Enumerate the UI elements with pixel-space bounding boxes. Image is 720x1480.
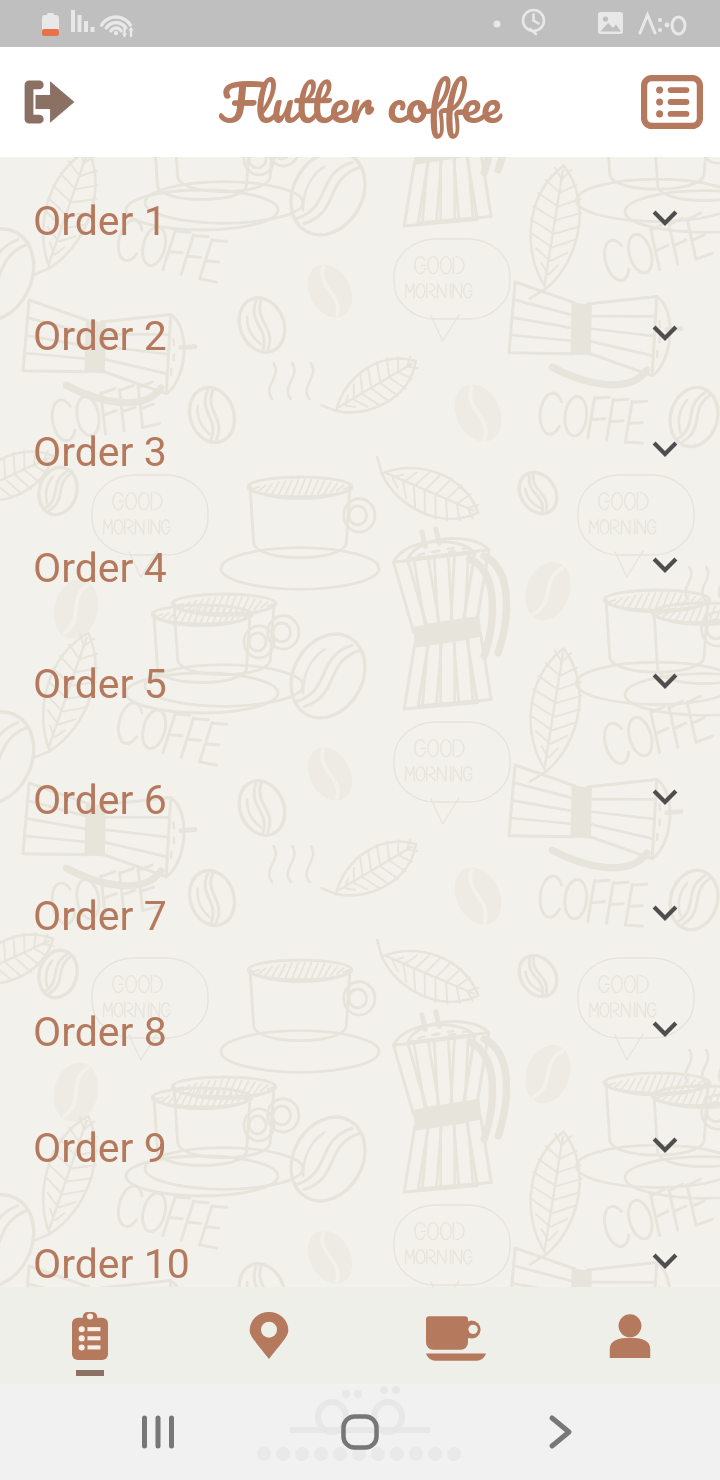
staticText: Flutter coffee bbox=[219, 58, 502, 146]
staticText: Order 5 bbox=[33, 660, 167, 708]
button[interactable]: Order 7 bbox=[0, 858, 720, 974]
staticText: Order 2 bbox=[33, 312, 167, 360]
button[interactable]: Orders bbox=[5, 1287, 175, 1384]
button[interactable]: Coffee menu bbox=[371, 1287, 541, 1384]
button[interactable]: Log out bbox=[14, 67, 84, 137]
button[interactable]: Order 4 bbox=[0, 510, 720, 626]
button[interactable]: Order 8 bbox=[0, 974, 720, 1090]
button[interactable]: Locations bbox=[184, 1287, 354, 1384]
staticText: Order 3 bbox=[33, 428, 167, 476]
button[interactable]: Profile bbox=[545, 1287, 715, 1384]
button[interactable]: Order 3 bbox=[0, 394, 720, 510]
staticText: Order 4 bbox=[33, 544, 167, 592]
staticText: Order 10 bbox=[33, 1240, 190, 1287]
button[interactable]: Order 2 bbox=[0, 278, 720, 394]
staticText: Order 7 bbox=[33, 892, 167, 940]
staticText: Order 1 bbox=[33, 197, 167, 245]
button[interactable]: Order 5 bbox=[0, 626, 720, 742]
button[interactable]: Order 6 bbox=[0, 742, 720, 858]
staticText: Order 8 bbox=[33, 1008, 167, 1056]
button[interactable]: Order 1 bbox=[0, 163, 720, 279]
button[interactable]: Order 10 bbox=[0, 1206, 720, 1287]
button[interactable]: My orders bbox=[636, 66, 708, 138]
staticText: Order 6 bbox=[33, 776, 167, 824]
button[interactable]: Order 9 bbox=[0, 1090, 720, 1206]
staticText: Order 9 bbox=[33, 1124, 167, 1172]
